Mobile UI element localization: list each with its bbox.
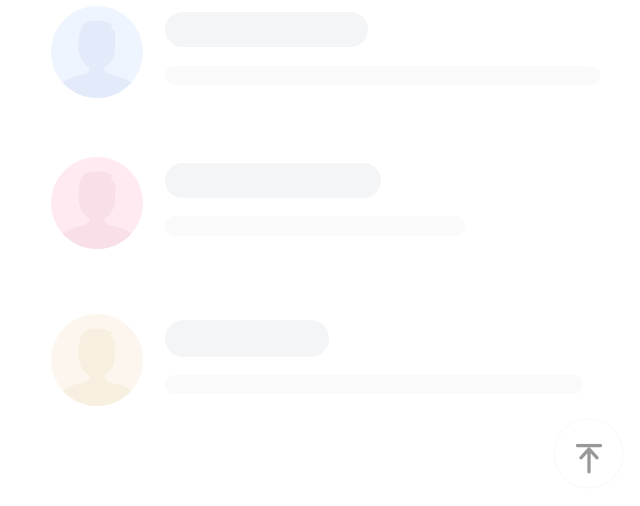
button[interactable]: Scroll to top [554, 419, 623, 488]
